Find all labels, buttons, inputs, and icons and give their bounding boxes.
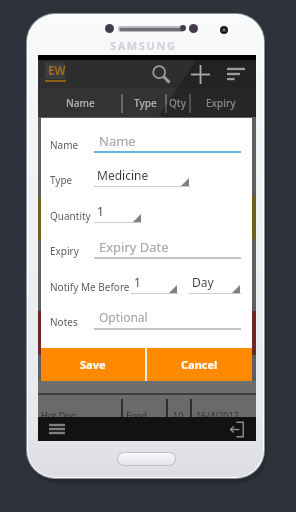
button[interactable]: Expiry Date (94, 238, 241, 264)
button[interactable]: EW (42, 60, 70, 88)
button[interactable]: Cancel (147, 348, 252, 381)
button[interactable]: Name (40, 88, 120, 117)
button[interactable]: Sort (222, 60, 250, 88)
staticText: Expiry (50, 244, 79, 258)
staticText: Cancel (181, 357, 218, 372)
staticText: Expiry (206, 96, 236, 110)
staticText: Notes (50, 315, 78, 329)
staticText: Quantity (50, 209, 91, 223)
staticText: Qty (169, 96, 186, 110)
button[interactable]: Type (125, 88, 165, 117)
staticText: Day (192, 274, 214, 290)
button[interactable]: Medicine (94, 167, 190, 193)
staticText: 1 (97, 203, 104, 219)
staticText: EW (48, 63, 66, 79)
staticText: 16/4/2017 (196, 409, 239, 417)
staticText: Save (80, 357, 106, 372)
button[interactable]: Optional (94, 309, 241, 335)
button[interactable]: 1 (94, 203, 142, 229)
staticText: Medicine (97, 167, 149, 183)
button[interactable]: Qty (167, 88, 187, 117)
staticText: Expiry Date (99, 238, 169, 256)
button[interactable]: Search (147, 60, 175, 88)
staticText: Name (66, 96, 95, 110)
button[interactable]: Save (41, 348, 145, 381)
staticText: 10 (173, 409, 184, 417)
staticText: Name (50, 138, 79, 152)
staticText: Optional (99, 309, 148, 325)
button[interactable]: Add item (186, 60, 214, 88)
staticText: SAMSUNG (110, 38, 177, 53)
staticText: Notify Me Before (50, 280, 130, 294)
button[interactable]: 1 (131, 274, 178, 300)
button[interactable]: Exit (223, 417, 251, 441)
button[interactable]: Menu (43, 417, 71, 441)
button[interactable]: Name (94, 132, 241, 158)
staticText: Type (134, 96, 157, 110)
staticText: 1 (134, 274, 141, 290)
staticText: Name (99, 132, 136, 150)
staticText: Hot Dog (41, 409, 77, 417)
staticText: Food (126, 409, 148, 417)
button[interactable]: Day (189, 274, 241, 300)
staticText: Type (50, 173, 73, 187)
button[interactable]: Expiry (198, 88, 243, 117)
